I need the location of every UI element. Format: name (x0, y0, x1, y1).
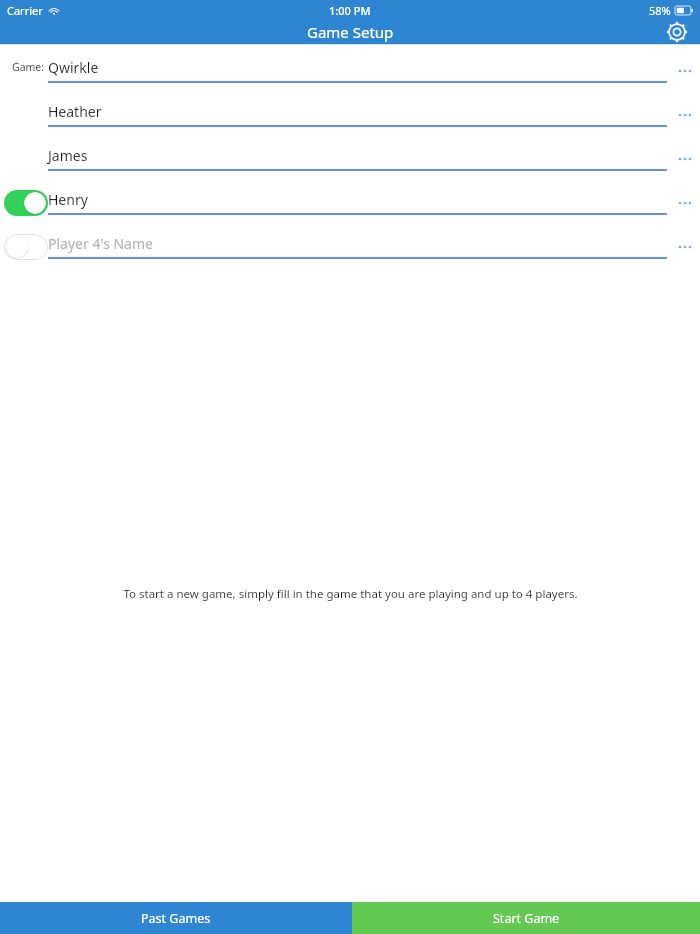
staticText: James (48, 146, 88, 165)
button[interactable]: Player disabled toggle (0, 231, 700, 275)
button[interactable]: Start Game (352, 902, 700, 934)
staticText: Heather (48, 102, 102, 121)
button[interactable]: Player disabled toggle (4, 234, 48, 260)
button[interactable]: Settings (662, 20, 692, 44)
button[interactable]: James (0, 143, 700, 187)
staticText: 1:00 PM (329, 3, 371, 18)
staticText: 58% (649, 3, 671, 18)
staticText: Player 4's Name (48, 234, 153, 253)
button[interactable]: Heather (0, 99, 700, 143)
button[interactable]: Past Games (0, 902, 352, 934)
staticText: Henry (48, 190, 88, 209)
staticText: Qwirkle (48, 58, 99, 77)
staticText: To start a new game, simply fill in the … (123, 586, 578, 602)
staticText: Carrier (7, 3, 43, 18)
button[interactable]: More options (675, 196, 695, 210)
button[interactable]: Player enabled toggle (4, 190, 48, 216)
staticText: Game Setup (307, 22, 394, 42)
staticText: Start Game (493, 910, 560, 927)
button[interactable]: More options (675, 64, 695, 78)
button[interactable]: Player enabled toggle (0, 187, 700, 231)
button[interactable]: More options (675, 108, 695, 122)
staticText: Game: (12, 60, 45, 74)
button[interactable]: Game: (0, 55, 700, 99)
button[interactable]: More options (675, 152, 695, 166)
staticText: Past Games (141, 910, 211, 927)
button[interactable]: More options (675, 240, 695, 254)
